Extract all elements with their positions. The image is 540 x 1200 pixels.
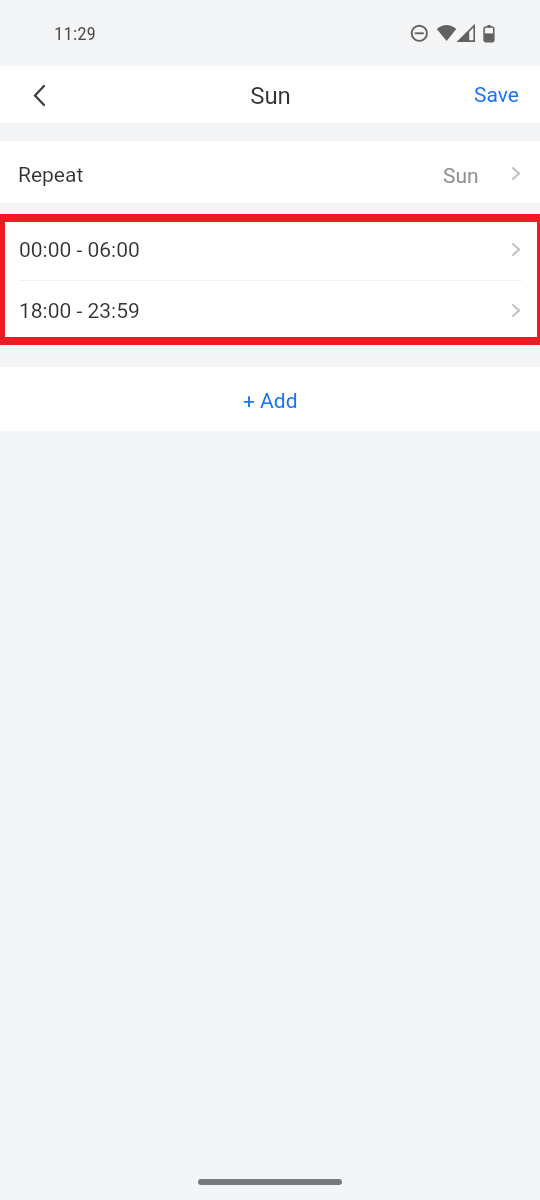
staticText: + Add <box>243 389 298 414</box>
staticText: Sun <box>250 82 291 110</box>
staticText: Sun <box>443 164 479 189</box>
button[interactable]: Back <box>21 77 57 113</box>
button[interactable]: Repeat <box>0 141 540 203</box>
button[interactable]: + Add <box>0 367 540 431</box>
staticText: Repeat <box>18 163 84 188</box>
button[interactable]: Save <box>453 70 540 119</box>
staticText: Save <box>474 83 519 108</box>
button[interactable]: 00:00 - 06:00 <box>5 222 537 280</box>
staticText: 18:00 - 23:59 <box>19 299 140 324</box>
staticText: 11:29 <box>54 22 96 44</box>
button[interactable]: 18:00 - 23:59 <box>5 281 537 337</box>
staticText: 00:00 - 06:00 <box>19 238 140 263</box>
